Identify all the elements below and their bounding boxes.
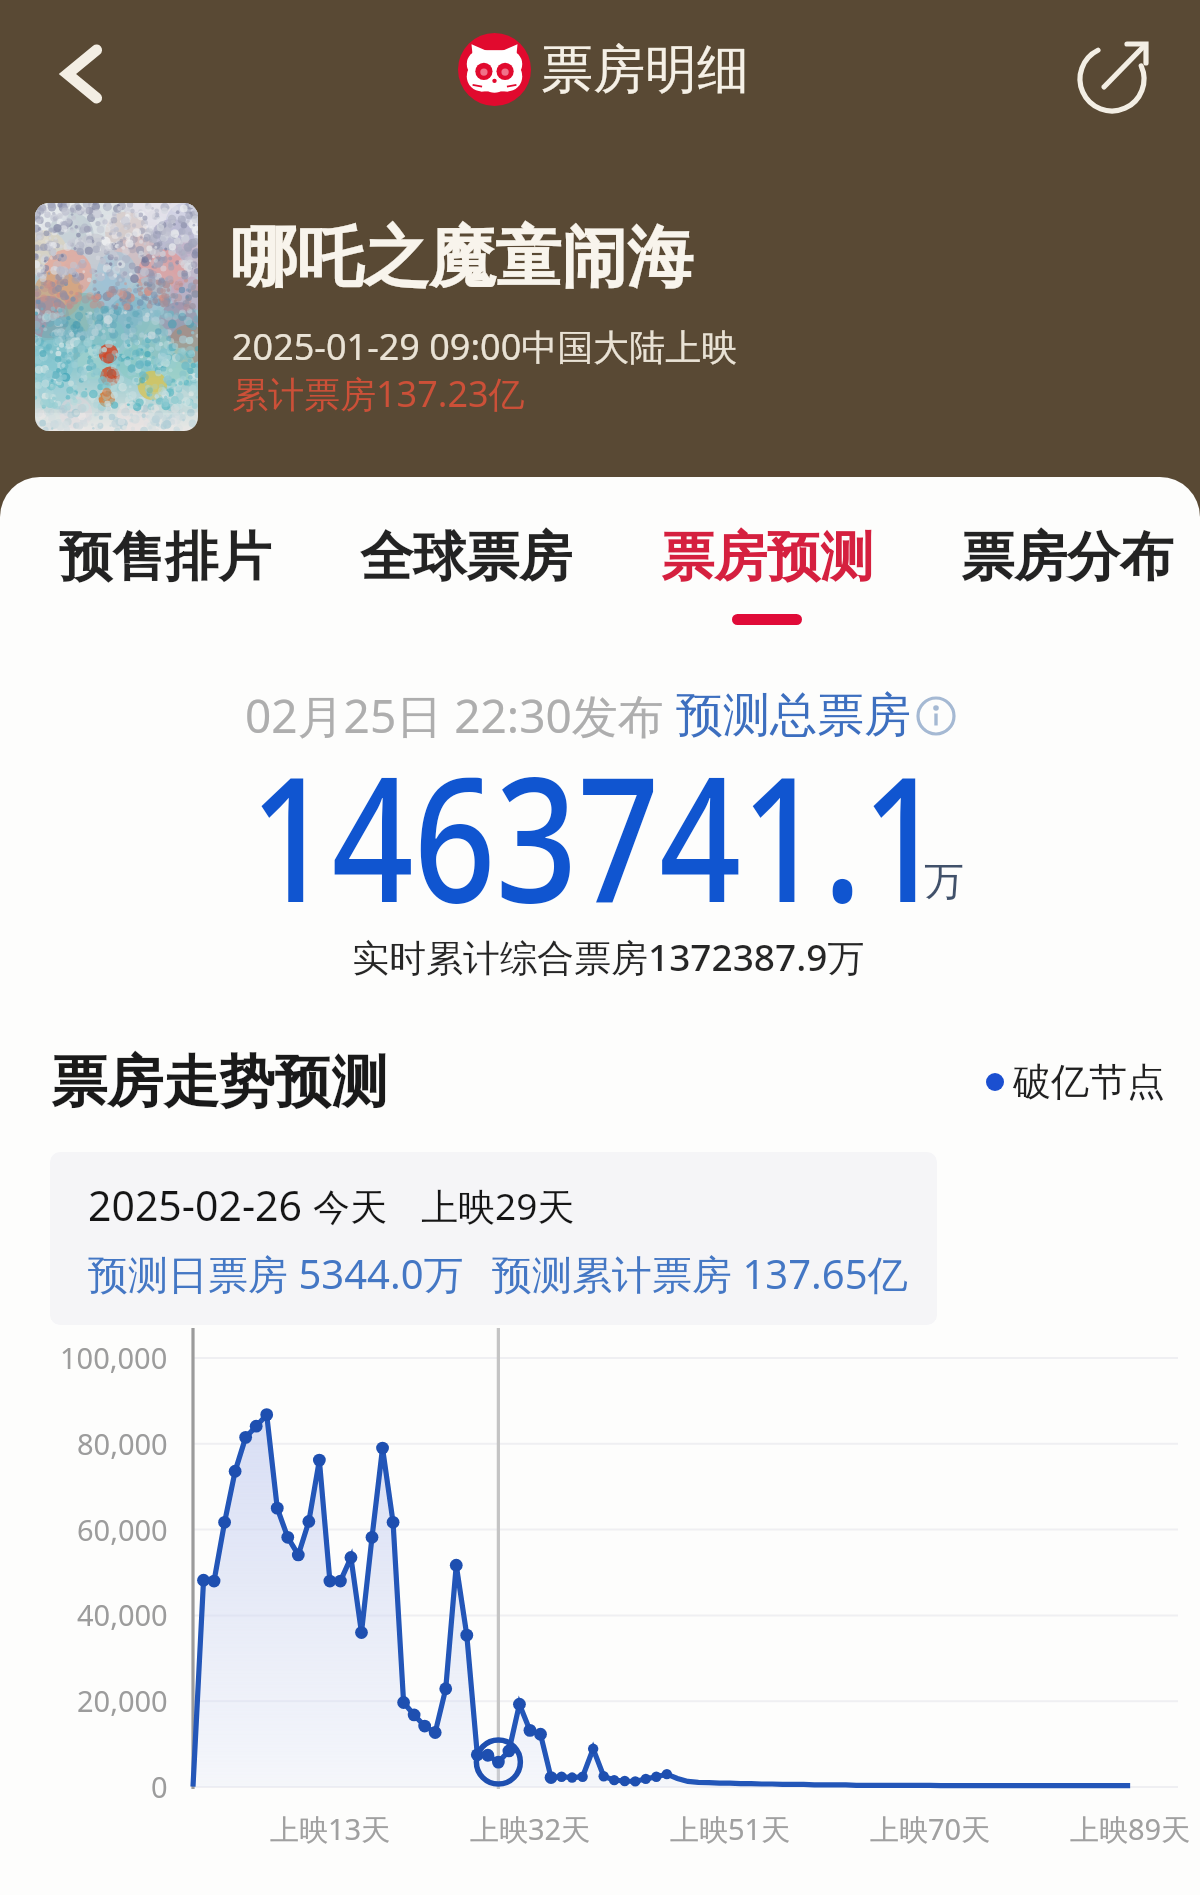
button[interactable]: 票房预测 [661,493,873,625]
button[interactable]: 哪吒之魔童闹海 [20,190,1020,445]
button[interactable]: 预售排片 [59,493,271,625]
staticText: 2025-01-29 09:00中国大陆上映 [232,322,738,371]
button[interactable]: Back [38,30,126,118]
button[interactable]: 票房分布 [961,493,1173,625]
staticText: 80,000 [77,1424,168,1463]
staticText: 预测日票房 5344.0万 [88,1246,464,1301]
staticText: 上映32天 [470,1809,591,1849]
staticText: 0 [151,1767,168,1806]
staticText: 20,000 [77,1681,168,1720]
staticText: 哪吒之魔童闹海 [231,216,693,299]
staticText: 上映51天 [670,1809,791,1849]
button[interactable]: 全球票房 [360,493,572,625]
staticText: 票房分布 [961,524,1173,591]
staticText: 预测总票房 [676,686,911,745]
staticText: 万 [924,856,964,906]
staticText: 全球票房 [360,524,572,591]
staticText: 上映13天 [270,1809,391,1849]
other: Info [916,696,956,736]
staticText: 100,000 [60,1338,168,1377]
button[interactable]: 预测总票房 [676,686,956,745]
staticText: 票房预测 [661,524,873,591]
button[interactable]: 2025-02-26 [50,1152,937,1325]
staticText: 今天 [313,1184,387,1231]
staticText: 实时累计综合票房1372387.9万 [352,931,865,982]
staticText: 票房明细 [541,37,749,103]
staticText: 上映29天 [421,1180,575,1231]
staticText: 破亿节点 [1013,1058,1165,1106]
staticText: 1463741.1 [250,718,944,908]
staticText: 上映70天 [870,1809,991,1849]
staticText: 2025-02-26 [88,1177,303,1233]
staticText: 40,000 [77,1595,168,1634]
staticText: 02月25日 22:30发布 [245,684,676,747]
staticText: 票房走势预测 [51,1047,387,1118]
staticText: 预售排片 [59,524,271,591]
staticText: 上映89天 [1070,1809,1191,1849]
staticText: 累计票房137.23亿 [232,369,525,418]
button[interactable]: Share [1072,32,1158,118]
staticText: 预测累计票房 137.65亿 [492,1246,908,1301]
staticText: 60,000 [77,1510,168,1549]
